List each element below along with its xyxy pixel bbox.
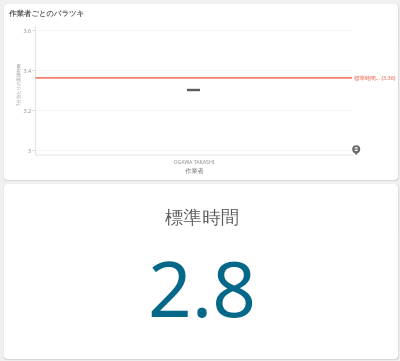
button[interactable] [4,4,398,180]
staticText: 作業者 [185,167,204,175]
button[interactable] [4,184,398,359]
other: Data point marker [352,145,362,155]
staticText: 3.4 [23,67,31,74]
staticText: 標準時間 [165,206,240,229]
staticText: 3 [27,147,31,154]
staticText: 1台当たりの実績時間 [14,63,20,106]
staticText: 3.6 [23,27,31,34]
staticText: (3.36) [380,74,396,81]
staticText: 作業者ごとのバラツキ [9,9,85,18]
staticText: 2.8 [148,235,257,339]
staticText: OGAWA TAKASHI [173,158,215,165]
staticText: 標準時間... [354,74,380,81]
staticText: 3.2 [23,107,31,114]
